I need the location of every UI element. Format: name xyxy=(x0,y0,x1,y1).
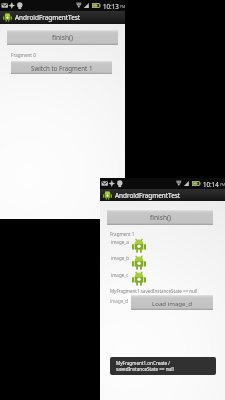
staticText: PM xyxy=(220,182,225,187)
staticText: Fragment 0 xyxy=(11,52,36,58)
staticText: PM xyxy=(120,4,126,9)
staticText: 10:13 xyxy=(103,2,119,10)
staticText: MyFragment1.savedInstanceState == null xyxy=(110,288,198,294)
other: image_b xyxy=(132,256,146,270)
staticText: Switch to Fragment 1 xyxy=(31,64,93,72)
staticText: AndroidFragmentTest xyxy=(115,191,181,200)
button[interactable]: finish() xyxy=(107,210,213,225)
other: image_c xyxy=(132,272,146,286)
staticText: MyFragment1.onCreate / xyxy=(116,360,170,366)
staticText: image_d xyxy=(110,298,128,304)
button[interactable]: finish() xyxy=(7,30,118,45)
staticText: 10:14 xyxy=(203,180,219,188)
staticText: savedInstanceState == null xyxy=(116,366,174,372)
staticText: finish() xyxy=(150,213,171,222)
other: image_a xyxy=(132,239,146,253)
staticText: finish() xyxy=(52,33,73,42)
staticText: AndroidFragmentTest xyxy=(15,13,81,22)
button[interactable]: Load image_d xyxy=(131,295,213,310)
staticText: Load image_d xyxy=(152,299,192,307)
staticText: image_b xyxy=(111,255,129,261)
staticText: image_a xyxy=(111,239,129,245)
staticText: Fragment 1 xyxy=(110,231,135,237)
button[interactable]: Switch to Fragment 1 xyxy=(11,61,112,74)
staticText: image_c xyxy=(111,272,129,278)
